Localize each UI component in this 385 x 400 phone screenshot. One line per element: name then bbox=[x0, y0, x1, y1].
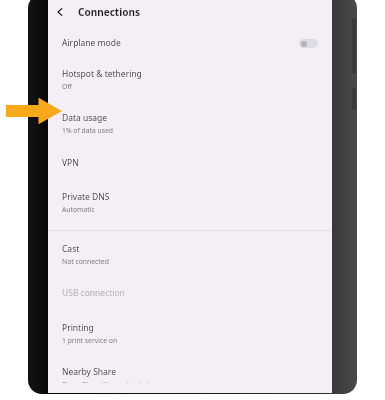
button[interactable]: Printing bbox=[48, 311, 332, 356]
staticText: USB connection bbox=[62, 287, 125, 299]
staticText: Airplane mode bbox=[62, 37, 121, 49]
button[interactable]: Data usage bbox=[48, 101, 332, 145]
staticText: Cast bbox=[62, 243, 80, 255]
button[interactable]: Back bbox=[48, 0, 72, 24]
staticText: Printing bbox=[62, 322, 94, 334]
staticText: Hotspot & tethering bbox=[62, 68, 142, 80]
staticText: Nearby Share bbox=[62, 366, 116, 378]
staticText: Share files with nearby devices bbox=[62, 380, 160, 383]
staticText: 1% of data used bbox=[62, 126, 114, 135]
button[interactable]: VPN bbox=[48, 145, 332, 181]
button[interactable]: Private DNS bbox=[48, 181, 332, 224]
staticText: 1 print service on bbox=[62, 336, 118, 345]
button[interactable]: Nearby Share bbox=[48, 356, 332, 393]
staticText: Data usage bbox=[62, 112, 108, 124]
button[interactable]: Airplane mode toggle bbox=[299, 39, 318, 48]
button[interactable]: USB connection bbox=[48, 277, 332, 311]
button[interactable]: Cast bbox=[48, 231, 332, 277]
staticText: Off bbox=[62, 82, 72, 91]
staticText: Automatic bbox=[62, 205, 95, 214]
staticText: Private DNS bbox=[62, 191, 110, 203]
button[interactable]: Airplane mode bbox=[48, 29, 332, 57]
staticText: Not connected bbox=[62, 257, 109, 266]
staticText: VPN bbox=[62, 157, 79, 169]
staticText: Connections bbox=[78, 5, 140, 19]
button[interactable]: Hotspot & tethering bbox=[48, 57, 332, 101]
